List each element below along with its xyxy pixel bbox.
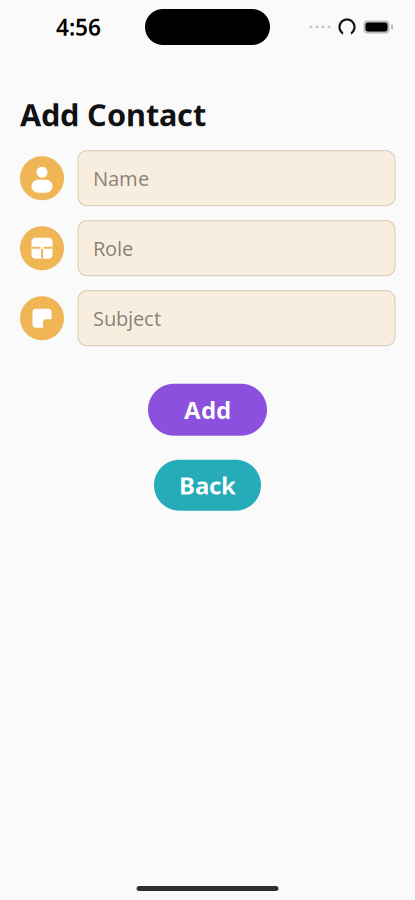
staticText: Add Contact <box>20 94 206 135</box>
staticText: 4:56 <box>56 12 101 42</box>
button[interactable]: Add <box>148 384 267 436</box>
button[interactable]: Role <box>78 221 395 276</box>
staticText: Subject <box>93 305 161 331</box>
button[interactable]: Subject <box>78 291 395 346</box>
staticText: Role <box>93 235 133 261</box>
staticText: Name <box>93 165 149 191</box>
staticText: Add <box>184 394 231 426</box>
staticText: Back <box>179 469 236 501</box>
button[interactable]: Back <box>154 460 261 511</box>
button[interactable]: Name <box>78 151 395 206</box>
